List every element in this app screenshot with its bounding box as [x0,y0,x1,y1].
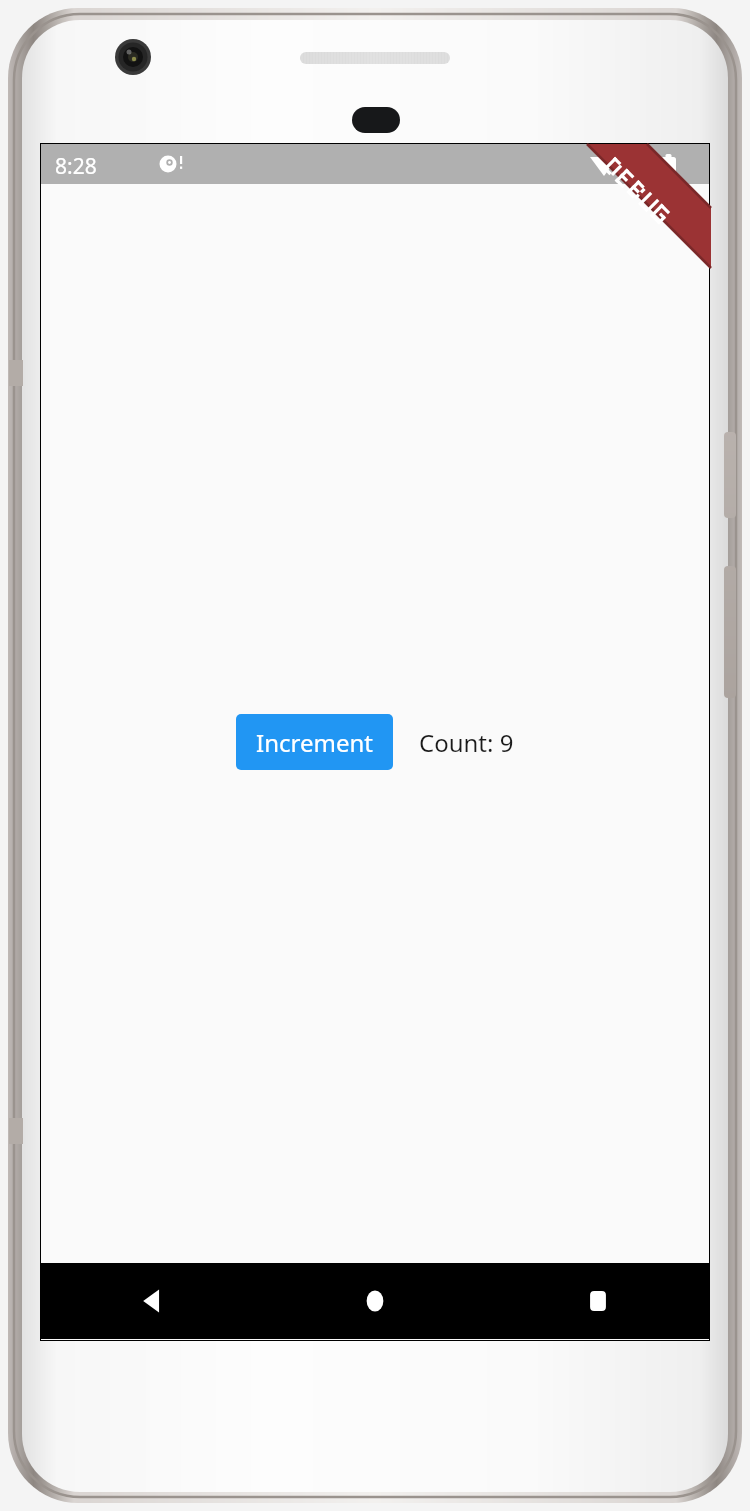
staticText: 8:28 [55,152,97,181]
button[interactable]: Back [41,1263,263,1339]
staticText: Count: 9 [419,726,514,759]
button[interactable]: Home [263,1263,486,1339]
staticText: Increment [256,726,373,759]
button[interactable]: Increment [236,714,393,770]
button[interactable]: Recents [486,1263,709,1339]
